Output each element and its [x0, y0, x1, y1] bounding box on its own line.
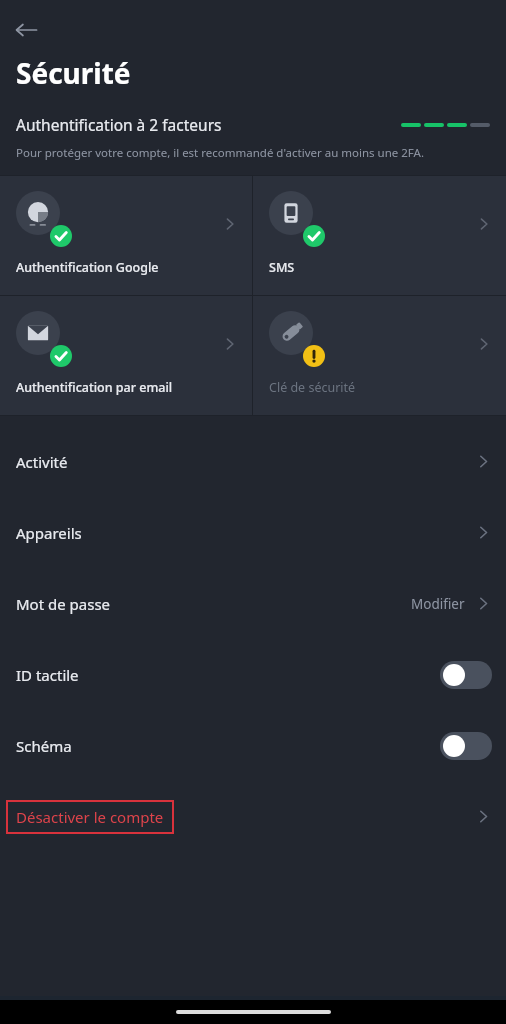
button[interactable]: SMS [253, 176, 506, 295]
staticText: Clé de sécurité [269, 379, 356, 396]
button[interactable]: Schéma toggle [440, 732, 492, 760]
button[interactable]: Schéma [0, 710, 506, 781]
staticText: Mot de passe [16, 594, 111, 614]
button[interactable]: Clé de sécurité [253, 296, 506, 415]
staticText: ID tactile [16, 665, 79, 685]
staticText: Pour protéger votre compte, il est recom… [16, 145, 424, 161]
button[interactable]: Activité [0, 426, 506, 497]
staticText: Appareils [16, 523, 82, 543]
button[interactable]: Back [6, 10, 46, 50]
staticText: SMS [269, 259, 295, 276]
staticText: Authentification à 2 facteurs [16, 114, 222, 135]
button[interactable]: Désactiver le compte [0, 781, 506, 852]
button[interactable]: ID tactile toggle [440, 661, 492, 689]
staticText: Authentification par email [16, 379, 173, 396]
button[interactable]: Appareils [0, 497, 506, 568]
button[interactable]: Authentification Google [0, 176, 252, 295]
staticText: Activité [16, 452, 68, 472]
staticText: Authentification Google [16, 259, 159, 276]
staticText: Modifier [411, 595, 465, 613]
staticText: Désactiver le compte [16, 807, 164, 827]
button[interactable]: Mot de passe [0, 568, 506, 639]
staticText: Sécurité [16, 54, 131, 92]
button[interactable]: Authentification par email [0, 296, 252, 415]
staticText: Schéma [16, 736, 72, 756]
button[interactable]: ID tactile [0, 639, 506, 710]
